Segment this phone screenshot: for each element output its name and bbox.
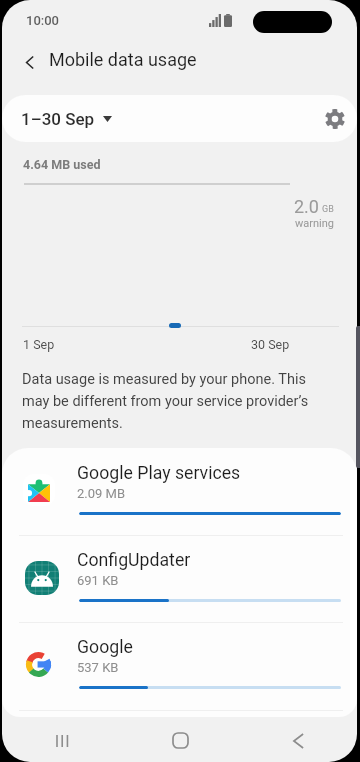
staticText: warning xyxy=(295,217,334,230)
button[interactable]: Settings xyxy=(319,103,351,135)
button[interactable]: Google Play services xyxy=(2,448,357,535)
button[interactable]: Recents xyxy=(2,719,121,762)
staticText: Data usage is measured by your phone. Th… xyxy=(22,371,332,432)
staticText: ConfigUpdater xyxy=(77,550,191,571)
staticText: 691 KB xyxy=(77,573,119,588)
button[interactable]: Back xyxy=(239,719,357,762)
staticText: Google xyxy=(77,637,133,658)
staticText: Mobile data usage xyxy=(49,49,197,70)
button[interactable]: ConfigUpdater xyxy=(2,535,357,622)
staticText: 2.09 MB xyxy=(77,486,126,501)
button[interactable]: Back xyxy=(14,46,46,78)
button[interactable]: Home xyxy=(121,719,239,762)
staticText: 4.64 MB used xyxy=(23,157,101,172)
staticText: 1 Sep xyxy=(23,337,55,352)
button[interactable]: 1–30 Sep xyxy=(19,103,114,135)
staticText: Google Play services xyxy=(77,463,241,484)
staticText: GB xyxy=(322,204,334,215)
staticText: 1–30 Sep xyxy=(21,109,95,129)
staticText: 30 Sep xyxy=(251,337,290,352)
staticText: 537 KB xyxy=(77,660,119,675)
staticText: 2.0 xyxy=(294,196,319,217)
staticText: 10:00 xyxy=(26,13,60,28)
button[interactable]: Google xyxy=(2,622,357,709)
